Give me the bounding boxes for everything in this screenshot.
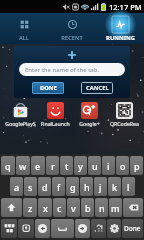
button[interactable]: r	[46, 156, 59, 175]
staticText: n	[99, 202, 105, 214]
staticText: t	[65, 160, 69, 172]
staticText: FinalLaunch	[40, 120, 70, 127]
button[interactable]: ALL	[0, 13, 48, 44]
staticText: Done	[124, 224, 141, 233]
button[interactable]: o	[116, 156, 129, 175]
staticText: q	[5, 160, 11, 172]
staticText: DONE	[40, 84, 57, 92]
button[interactable]: q	[1, 156, 15, 175]
button[interactable]: Add tab	[65, 48, 79, 62]
button[interactable]: i	[102, 156, 115, 175]
staticText: s	[28, 181, 33, 193]
staticText: o	[120, 160, 126, 172]
button[interactable]: v	[67, 198, 80, 217]
staticText: RECENT	[61, 34, 83, 42]
button[interactable]: Enter the name of the tab.	[19, 63, 125, 76]
button[interactable]: RUNNING	[96, 13, 144, 44]
button[interactable]: Google+	[72, 102, 106, 127]
button[interactable]: y	[74, 156, 87, 175]
button[interactable]: n	[95, 198, 108, 217]
button[interactable]: Backspace	[123, 198, 143, 217]
staticText: l	[127, 181, 130, 193]
button[interactable]: e	[31, 156, 45, 175]
staticText: p	[134, 160, 140, 172]
staticText: y	[78, 160, 83, 172]
button[interactable]: Input language	[1, 219, 17, 238]
staticText: b	[85, 202, 91, 214]
staticText: j	[99, 181, 102, 193]
button[interactable]: b	[81, 198, 94, 217]
button[interactable]: m	[109, 198, 122, 217]
staticText: x	[43, 202, 48, 214]
button[interactable]: w	[16, 156, 30, 175]
button[interactable]: FinalLaunch	[38, 102, 72, 127]
staticText: h	[84, 181, 90, 193]
button[interactable]: Previous	[35, 219, 50, 238]
staticText: CANCEL	[86, 84, 109, 92]
staticText: 12:17 PM	[109, 2, 142, 12]
staticText: Google+	[79, 120, 100, 127]
button[interactable]: Done	[122, 219, 143, 238]
button[interactable]: CANCEL	[81, 82, 113, 94]
button[interactable]: Next	[75, 219, 90, 238]
button[interactable]: z	[23, 198, 37, 217]
button[interactable]: u	[88, 156, 101, 175]
button[interactable]: d	[38, 177, 51, 196]
staticText: z	[28, 202, 33, 214]
button[interactable]: Space	[51, 219, 74, 238]
staticText: u	[92, 160, 98, 172]
button[interactable]: RECENT	[48, 13, 96, 44]
button[interactable]: Settings	[107, 219, 121, 238]
button[interactable]: Voice input	[18, 219, 34, 238]
staticText: GooglePlayS	[5, 120, 36, 127]
button[interactable]: QRCodeRea	[107, 102, 141, 127]
button[interactable]: a	[10, 177, 23, 196]
button[interactable]: DONE	[32, 82, 64, 94]
button[interactable]: j	[94, 177, 107, 196]
button[interactable]: Symbols	[91, 219, 106, 238]
staticText: QRCodeRea	[110, 120, 139, 127]
staticText: Enter the name of the tab.	[25, 66, 99, 74]
staticText: ALL	[19, 34, 29, 42]
staticText: RUNNING	[106, 34, 135, 42]
button[interactable]: x	[38, 198, 52, 217]
staticText: e	[35, 160, 41, 172]
staticText: a	[14, 181, 20, 193]
staticText: g	[70, 181, 76, 193]
button[interactable]: s	[24, 177, 37, 196]
button[interactable]: g	[66, 177, 79, 196]
staticText: d	[42, 181, 48, 193]
staticText: w	[19, 160, 27, 172]
button[interactable]: Shift	[1, 198, 22, 217]
button[interactable]: h	[80, 177, 93, 196]
staticText: f	[57, 181, 61, 193]
button[interactable]: p	[130, 156, 143, 175]
staticText: i	[107, 160, 110, 172]
staticText: v	[71, 202, 76, 214]
staticText: k	[112, 181, 118, 193]
button[interactable]: GooglePlayS	[3, 102, 37, 127]
button[interactable]: c	[53, 198, 66, 217]
button[interactable]: f	[52, 177, 65, 196]
button[interactable]: k	[108, 177, 121, 196]
staticText: r	[51, 160, 55, 172]
button[interactable]: t	[60, 156, 73, 175]
staticText: c	[57, 202, 62, 214]
staticText: m	[111, 202, 120, 214]
button[interactable]: l	[122, 177, 135, 196]
